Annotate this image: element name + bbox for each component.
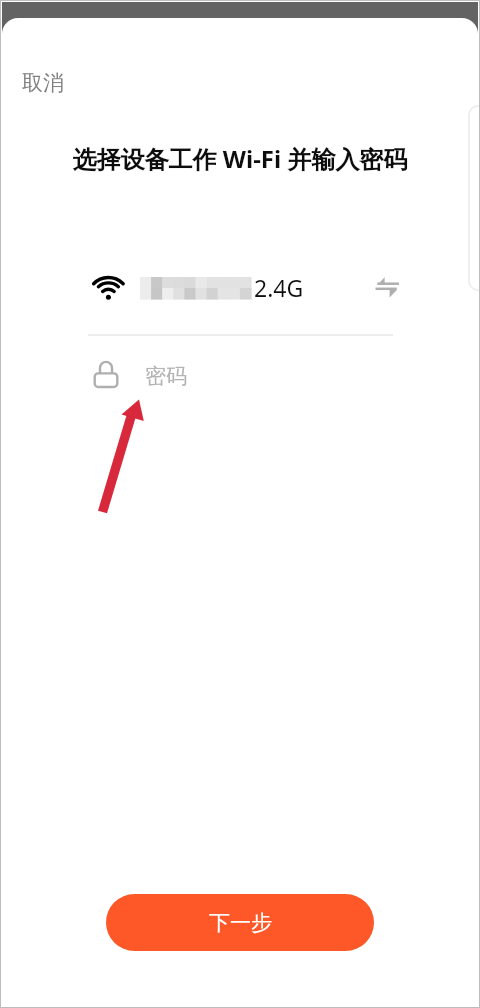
staticText: 密码: [145, 363, 187, 389]
button[interactable]: 下一步: [106, 894, 374, 951]
staticText: 2.4G: [254, 272, 304, 303]
button[interactable]: Switch Wi-Fi network: [366, 268, 408, 310]
button[interactable]: 密码: [88, 350, 392, 402]
button[interactable]: 2.4G: [88, 262, 392, 314]
staticText: 取消: [22, 70, 64, 96]
button[interactable]: 取消: [6, 56, 80, 110]
staticText: 选择设备工作 Wi-Fi 并输入密码: [0, 142, 480, 175]
staticText: 下一步: [209, 910, 272, 936]
